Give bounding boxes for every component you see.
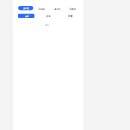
staticText: 已完成	[38, 8, 45, 11]
staticText: 已取消	[69, 8, 76, 11]
button[interactable]: 价格	[41, 14, 55, 19]
staticText: 最新	[25, 15, 29, 17]
button[interactable]: 已取消	[65, 7, 79, 12]
staticText: 销量	[68, 15, 73, 18]
staticText: 全分类	[23, 7, 29, 9]
button[interactable]: 进行中	[50, 7, 64, 12]
button[interactable]: 已完成	[34, 7, 48, 12]
button[interactable]: 暂无	[40, 23, 54, 28]
staticText: 价格	[46, 15, 51, 18]
button[interactable]: All categories filter	[18, 5, 34, 10]
button[interactable]: 销量	[63, 14, 77, 19]
button[interactable]: Newest sort	[19, 13, 35, 18]
staticText: 进行中	[54, 8, 61, 11]
staticText: 暂无	[45, 24, 49, 27]
